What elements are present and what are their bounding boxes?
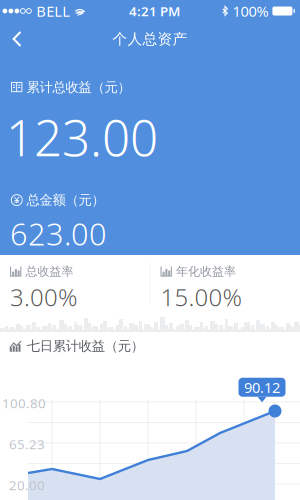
staticText: 123.00 — [6, 104, 158, 170]
staticText: 累计总收益（元） — [26, 79, 130, 95]
staticText: 个人总资产 — [112, 30, 187, 48]
staticText: 623.00 — [10, 213, 107, 254]
staticText: 3.00% — [10, 281, 77, 313]
staticText: 总金额（元） — [26, 192, 104, 208]
button[interactable]: Back — [0, 21, 34, 57]
staticText: 65.23 — [9, 435, 45, 453]
staticText: 90.12 — [244, 377, 280, 397]
staticText: 年化收益率 — [176, 264, 236, 279]
staticText: 100% — [232, 1, 268, 21]
staticText: 100.80 — [2, 394, 46, 412]
staticText: 总收益率 — [25, 264, 73, 279]
staticText: 4:21 PM — [129, 2, 180, 20]
staticText: 七日累计收益（元） — [27, 338, 144, 354]
staticText: BELL — [36, 1, 70, 21]
staticText: 15.00% — [160, 281, 241, 313]
staticText: 20.00 — [9, 476, 45, 494]
